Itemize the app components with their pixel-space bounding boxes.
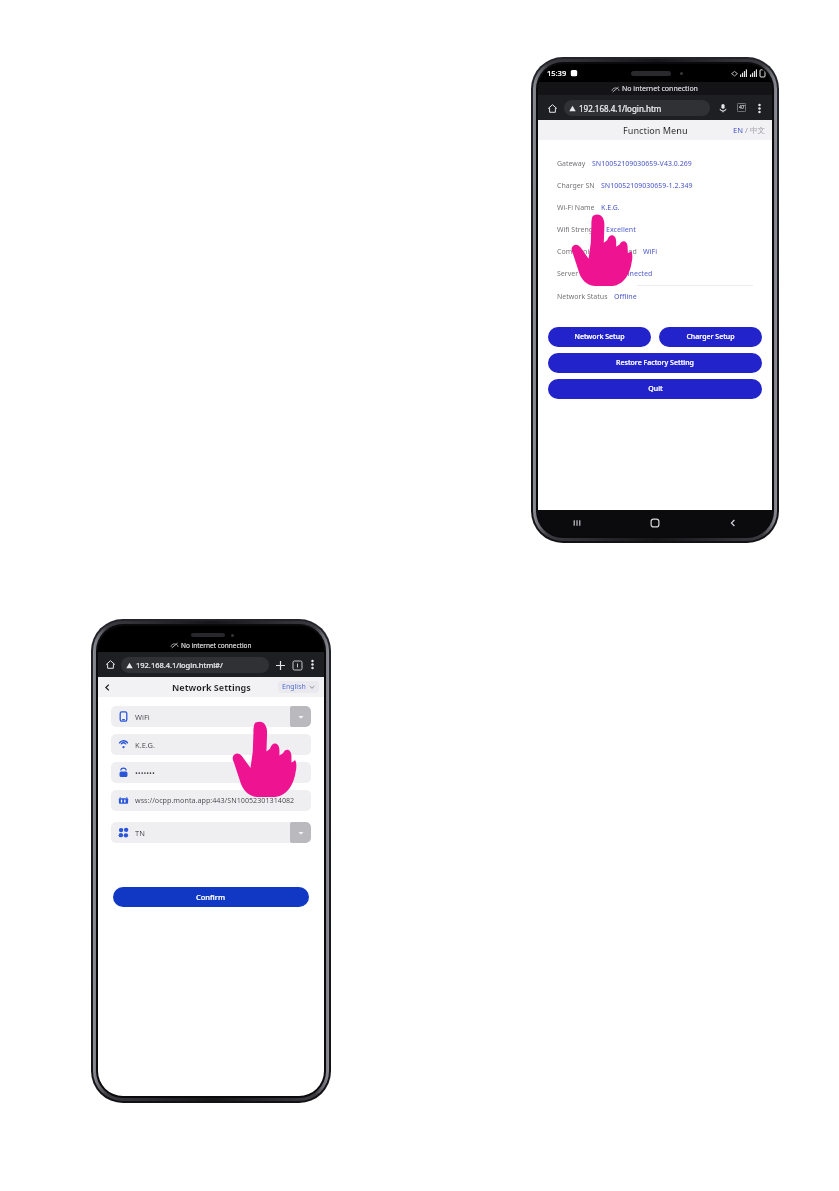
staticText: Network Setup xyxy=(574,332,625,342)
staticText: WiFi xyxy=(643,247,658,257)
staticText: K.E.G. xyxy=(601,203,620,213)
staticText: Server Status xyxy=(557,269,601,279)
staticText: Restore Factory Setting xyxy=(616,358,694,368)
staticText: 15:39 xyxy=(547,68,567,78)
button[interactable]: Home xyxy=(544,100,560,116)
staticText: EN xyxy=(733,125,743,135)
staticText: Network Status xyxy=(557,292,608,302)
button[interactable]: Back xyxy=(98,678,116,696)
button[interactable]: 192.168.4.1/login.htm xyxy=(564,100,710,116)
button[interactable]: TN xyxy=(111,822,311,843)
button[interactable]: K.E.G. xyxy=(111,734,311,755)
button[interactable]: Network Setup xyxy=(548,327,651,347)
button[interactable]: 192.168.4.1/login.html#/ xyxy=(121,657,269,673)
button[interactable]: Home xyxy=(616,510,694,536)
button[interactable]: ••••••• xyxy=(111,762,311,783)
staticText: K.E.G. xyxy=(135,740,155,750)
staticText: Offline xyxy=(614,292,637,302)
staticText: Network Settings xyxy=(172,681,251,693)
staticText: Wifi Strength xyxy=(557,225,600,235)
staticText: Gateway xyxy=(557,159,586,169)
button[interactable]: Confirm xyxy=(113,887,309,907)
staticText: wss://ocpp.monta.app:443/SN1005230131408… xyxy=(135,795,295,805)
button[interactable]: Recents xyxy=(538,510,616,536)
button[interactable]: More options xyxy=(306,658,319,671)
staticText: No internet connection xyxy=(181,641,252,650)
staticText: SN10052109030659-1.2.349 xyxy=(601,181,693,191)
button[interactable]: Charger Setup xyxy=(659,327,762,347)
staticText: Disconnected xyxy=(607,269,653,279)
staticText: 192.168.4.1/login.htm xyxy=(579,103,662,114)
button[interactable]: WiFi xyxy=(111,706,311,727)
staticText: Wi-Fi Name xyxy=(557,203,595,213)
button[interactable]: wss://ocpp.monta.app:443/SN1005230131408… xyxy=(111,790,311,811)
button[interactable]: Expand xyxy=(290,706,311,727)
staticText: Charger Setup xyxy=(686,332,735,342)
staticText: Charger SN xyxy=(557,181,595,191)
staticText: 47 xyxy=(739,104,745,111)
staticText: English xyxy=(282,682,306,692)
button[interactable]: New tab xyxy=(273,658,287,672)
staticText: TN xyxy=(135,828,145,838)
staticText: ••••••• xyxy=(135,768,155,778)
button[interactable]: EN xyxy=(733,125,765,135)
staticText: Function Menu xyxy=(623,124,688,136)
staticText: WiFi xyxy=(135,712,150,722)
button[interactable]: Expand xyxy=(290,822,311,843)
staticText: SN10052109030659-V43.0.269 xyxy=(592,159,692,169)
staticText: 中文 xyxy=(750,126,765,135)
staticText: Excellent xyxy=(606,225,636,235)
button[interactable]: Voice search xyxy=(715,100,730,115)
staticText: Quit xyxy=(648,384,663,394)
staticText: Confirm xyxy=(196,892,226,902)
button[interactable]: More options xyxy=(752,101,766,115)
staticText: / xyxy=(743,125,750,135)
button[interactable]: English xyxy=(278,681,319,693)
button[interactable]: Back xyxy=(694,510,772,536)
button[interactable]: Tabs xyxy=(290,658,304,672)
staticText: Communication Method xyxy=(557,247,637,257)
button[interactable]: Tabs xyxy=(734,100,749,115)
button[interactable]: Home xyxy=(103,657,118,672)
staticText: No internet connection xyxy=(622,84,698,94)
button[interactable]: Quit xyxy=(548,379,762,399)
staticText: 192.168.4.1/login.html#/ xyxy=(136,660,223,670)
button[interactable]: Restore Factory Setting xyxy=(548,353,762,373)
